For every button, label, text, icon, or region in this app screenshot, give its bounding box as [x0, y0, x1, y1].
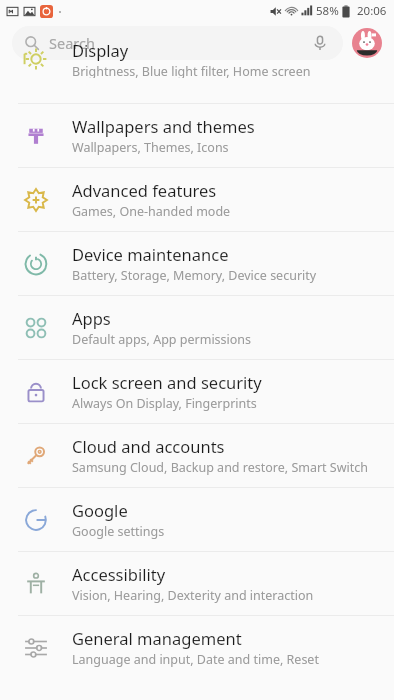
staticText: Wallpapers and themes	[72, 115, 255, 137]
staticText: General management	[72, 627, 242, 649]
staticText: Brightness, Blue light filter, Home scre…	[72, 63, 311, 78]
staticText: 58%	[316, 3, 339, 19]
staticText: Battery, Storage, Memory, Device securit…	[72, 267, 317, 284]
button[interactable]: Device maintenance	[0, 232, 394, 295]
staticText: Cloud and accounts	[72, 435, 225, 457]
button[interactable]: Profile	[352, 28, 382, 58]
staticText: Wallpapers, Themes, Icons	[72, 139, 229, 156]
staticText: Always On Display, Fingerprints	[72, 395, 257, 412]
button[interactable]: Advanced features	[0, 168, 394, 231]
staticText: Language and input, Date and time, Reset	[72, 651, 319, 668]
button[interactable]: Lock screen and security	[0, 360, 394, 423]
staticText: Samsung Cloud, Backup and restore, Smart…	[72, 459, 369, 476]
button[interactable]: Search	[12, 26, 343, 60]
staticText: Vision, Hearing, Dexterity and interacti…	[72, 587, 314, 604]
staticText: Search	[49, 33, 95, 53]
button[interactable]: General management	[0, 616, 394, 679]
staticText: Google settings	[72, 523, 165, 540]
staticText: Device maintenance	[72, 243, 229, 265]
button[interactable]: Cloud and accounts	[0, 424, 394, 487]
staticText: Accessibility	[72, 563, 166, 585]
staticText: Games, One-handed mode	[72, 203, 231, 220]
staticText: Google	[72, 499, 128, 521]
button[interactable]: Wallpapers and themes	[0, 104, 394, 167]
button[interactable]: Voice search	[309, 32, 331, 54]
staticText: Lock screen and security	[72, 371, 262, 393]
staticText: Advanced features	[72, 179, 217, 201]
button[interactable]: Google	[0, 488, 394, 551]
button[interactable]: Display	[0, 64, 394, 103]
staticText: Apps	[72, 307, 111, 329]
staticText: 20:06	[357, 3, 387, 19]
button[interactable]: Accessibility	[0, 552, 394, 615]
button[interactable]: Apps	[0, 296, 394, 359]
staticText: Default apps, App permissions	[72, 331, 252, 348]
staticText: Display	[72, 39, 129, 61]
